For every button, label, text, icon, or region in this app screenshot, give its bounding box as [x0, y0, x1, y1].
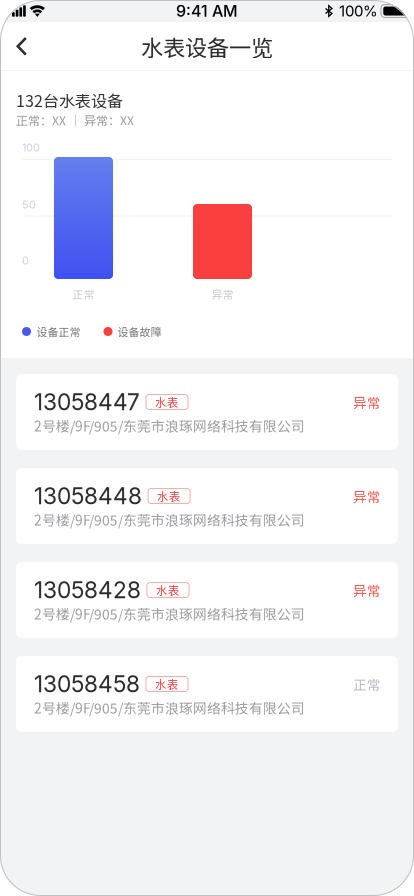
- staticText: 2号楼/9F/905/东莞市浪琢网络科技有限公司: [34, 697, 305, 717]
- staticText: 异常: [353, 392, 381, 412]
- staticText: 2号楼/9F/905/东莞市浪琢网络科技有限公司: [34, 603, 305, 623]
- staticText: 13058428: [34, 576, 141, 604]
- staticText: 设备正常: [36, 323, 80, 339]
- staticText: 2号楼/9F/905/东莞市浪琢网络科技有限公司: [34, 415, 305, 435]
- staticText: 水表: [155, 394, 179, 410]
- button[interactable]: 13058428: [16, 562, 398, 638]
- staticText: 水表: [157, 488, 181, 504]
- button[interactable]: 13058458: [16, 656, 398, 732]
- staticText: 0: [22, 254, 29, 267]
- staticText: 50: [22, 198, 36, 211]
- button[interactable]: Back: [0, 22, 44, 71]
- staticText: 异常: [353, 486, 381, 506]
- staticText: 设备故障: [117, 323, 161, 339]
- staticText: 异常: [353, 580, 381, 600]
- staticText: 13058447: [34, 388, 140, 416]
- staticText: 13058458: [34, 670, 140, 698]
- staticText: 132台水表设备: [16, 88, 123, 112]
- button[interactable]: 13058448: [16, 468, 398, 544]
- staticText: 异常: [211, 286, 233, 302]
- staticText: 水表: [155, 676, 179, 692]
- staticText: 100: [22, 141, 40, 154]
- staticText: 正常: [72, 286, 94, 302]
- staticText: 2号楼/9F/905/东莞市浪琢网络科技有限公司: [34, 509, 305, 529]
- staticText: 水表设备一览: [141, 30, 273, 62]
- staticText: 100%: [339, 2, 378, 20]
- staticText: 13058448: [34, 482, 142, 510]
- staticText: 正常：XX ｜ 异常：XX: [16, 111, 134, 129]
- staticText: 正常: [353, 674, 381, 694]
- staticText: 9:41 AM: [176, 1, 238, 21]
- staticText: 水表: [156, 582, 180, 598]
- button[interactable]: 13058447: [16, 374, 398, 450]
